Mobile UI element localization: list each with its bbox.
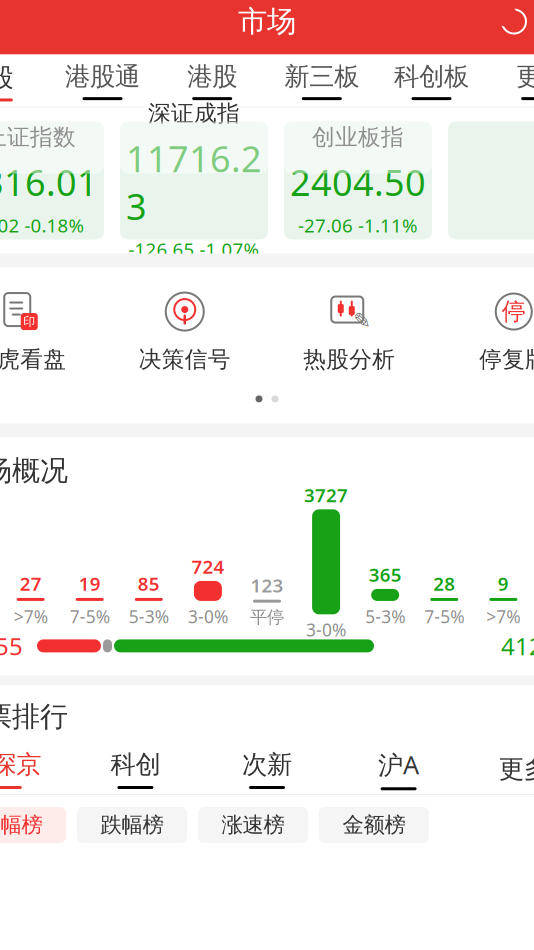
staticText: 365 xyxy=(369,562,402,587)
staticText: 停复牌 xyxy=(479,346,534,373)
button[interactable]: 科创板 xyxy=(377,55,486,107)
staticText: 次新 xyxy=(242,749,292,780)
button[interactable]: 夜间模式 xyxy=(490,0,534,46)
button[interactable]: 上证指数 xyxy=(0,122,104,240)
button[interactable]: 科创 xyxy=(70,744,201,794)
button[interactable]: 更多 xyxy=(486,55,534,107)
staticText: 印 xyxy=(23,314,35,329)
staticText: -6.02 -0.18% xyxy=(0,213,84,238)
staticText: >7% xyxy=(486,605,520,628)
staticText: 市场 xyxy=(238,3,296,39)
button[interactable]: 跌幅榜 xyxy=(77,807,187,843)
staticText: 龙虎看盘 xyxy=(0,346,66,373)
staticText: 跌幅榜 xyxy=(100,812,163,838)
button[interactable]: 次新 xyxy=(201,744,333,794)
staticText: >7% xyxy=(14,605,48,628)
staticText: 2404.50 xyxy=(290,158,426,206)
staticText: 新三板 xyxy=(284,61,359,92)
staticText: 科创板 xyxy=(394,61,469,92)
staticText: 9 xyxy=(498,571,509,596)
staticText: 4129 xyxy=(501,630,534,662)
staticText: 3-0% xyxy=(306,618,346,641)
staticText: 股票排行 xyxy=(0,700,68,734)
staticText: 涨速榜 xyxy=(221,812,284,838)
staticText: 港股 xyxy=(187,61,237,92)
staticText: 平停 xyxy=(250,607,284,628)
staticText: 3-0% xyxy=(188,605,228,628)
staticText: 港股通 xyxy=(65,61,140,92)
staticText: 沪A xyxy=(378,748,419,781)
staticText: 市场概况 xyxy=(0,454,68,488)
staticText: 855 xyxy=(0,630,23,662)
staticText: 19 xyxy=(79,571,101,596)
button[interactable]: 港股通 xyxy=(48,55,157,107)
staticText: 123 xyxy=(250,573,283,598)
staticText: 5-3% xyxy=(365,605,405,628)
staticText: -27.06 -1.11% xyxy=(298,213,418,238)
button[interactable]: 停 xyxy=(431,290,534,373)
staticText: 涨幅榜 xyxy=(0,812,42,838)
staticText: 724 xyxy=(191,554,224,579)
staticText: 28 xyxy=(433,571,455,596)
staticText: A股 xyxy=(0,60,13,93)
staticText: 更多 xyxy=(499,753,534,784)
staticText: 3727 xyxy=(304,482,348,507)
button[interactable]: 新三板 xyxy=(267,55,377,107)
staticText: 热股分析 xyxy=(303,346,395,373)
staticText: 3316.01 xyxy=(0,158,98,206)
button[interactable]: 印 xyxy=(0,290,102,373)
button[interactable]: 更多 xyxy=(464,744,534,794)
staticText: 上证指数 xyxy=(0,123,76,151)
staticText: 11716.23 xyxy=(126,134,262,230)
staticText: 更多 xyxy=(516,61,534,92)
staticText: 5-3% xyxy=(129,605,169,628)
staticText: 27 xyxy=(20,571,42,596)
staticText: 7-5% xyxy=(70,605,110,628)
button[interactable]: ✎ xyxy=(267,290,431,373)
staticText: 科创 xyxy=(110,749,160,780)
button[interactable]: 深证成指 xyxy=(120,122,268,240)
button[interactable]: 决策信号 xyxy=(102,290,267,373)
button[interactable]: A股 xyxy=(0,55,48,107)
staticText: 85 xyxy=(138,571,160,596)
button[interactable]: 涨速榜 xyxy=(198,807,308,843)
staticText: 沪深京 xyxy=(0,749,41,780)
staticText: 决策信号 xyxy=(139,346,231,373)
button[interactable]: 沪深京 xyxy=(0,744,70,794)
button[interactable]: 金额榜 xyxy=(319,807,429,843)
button[interactable]: 涨幅榜 xyxy=(0,807,66,843)
button[interactable]: 沪A xyxy=(333,744,464,794)
staticText: 停 xyxy=(502,297,526,326)
staticText: -126.65 -1.07% xyxy=(128,237,259,262)
staticText: ✎ xyxy=(353,308,371,333)
button[interactable]: 港股 xyxy=(157,55,267,107)
staticText: 深证成指 xyxy=(148,99,240,127)
staticText: 创业板指 xyxy=(312,123,404,151)
staticText: 7-5% xyxy=(424,605,464,628)
staticText: 金额榜 xyxy=(342,812,405,838)
button[interactable]: 创业板指 xyxy=(284,122,432,240)
